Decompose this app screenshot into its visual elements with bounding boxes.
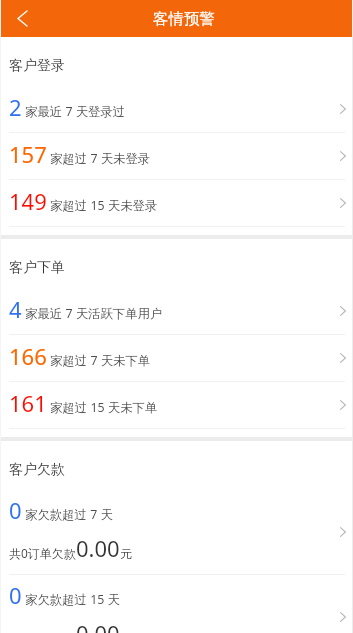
button[interactable]: 4 (0, 288, 353, 334)
button[interactable]: 2 (0, 86, 353, 132)
button[interactable]: 157 (0, 133, 353, 179)
button[interactable]: 161 (0, 382, 353, 428)
staticText: 161 (9, 388, 47, 418)
staticText: 166 (9, 341, 47, 371)
button[interactable]: 0 (0, 490, 353, 574)
staticText: 家超过 7 天未下单 (50, 352, 151, 369)
staticText: 家最近 7 天活跃下单用户 (25, 305, 163, 322)
staticText: 家超过 15 天未下单 (50, 399, 158, 416)
button[interactable]: 0 (0, 575, 353, 633)
staticText: 0.00 (76, 533, 120, 563)
staticText: 4 (9, 294, 22, 324)
staticText: 共0订单欠款 (9, 545, 76, 561)
staticText: 客情预警 (153, 9, 215, 29)
staticText: 家超过 7 天未登录 (50, 150, 151, 167)
staticText: 家欠款超过 15 天 (25, 591, 120, 608)
staticText: 0 (9, 580, 22, 610)
staticText: 157 (9, 139, 47, 169)
staticText: 0 (9, 495, 22, 525)
staticText: 元 (120, 546, 132, 561)
staticText: 家欠款超过 7 天 (25, 506, 113, 523)
staticText: 客户欠款 (9, 461, 65, 479)
staticText: 客户下单 (9, 259, 65, 277)
button[interactable]: Back (0, 0, 42, 37)
button[interactable]: 149 (0, 180, 353, 226)
staticText: 2 (9, 92, 22, 122)
staticText: 149 (9, 186, 47, 216)
staticText: 客户登录 (9, 57, 65, 75)
staticText: 家最近 7 天登录过 (25, 103, 126, 120)
staticText: 0.00 (76, 618, 120, 633)
staticText: 家超过 15 天未登录 (50, 197, 158, 214)
button[interactable]: 166 (0, 335, 353, 381)
